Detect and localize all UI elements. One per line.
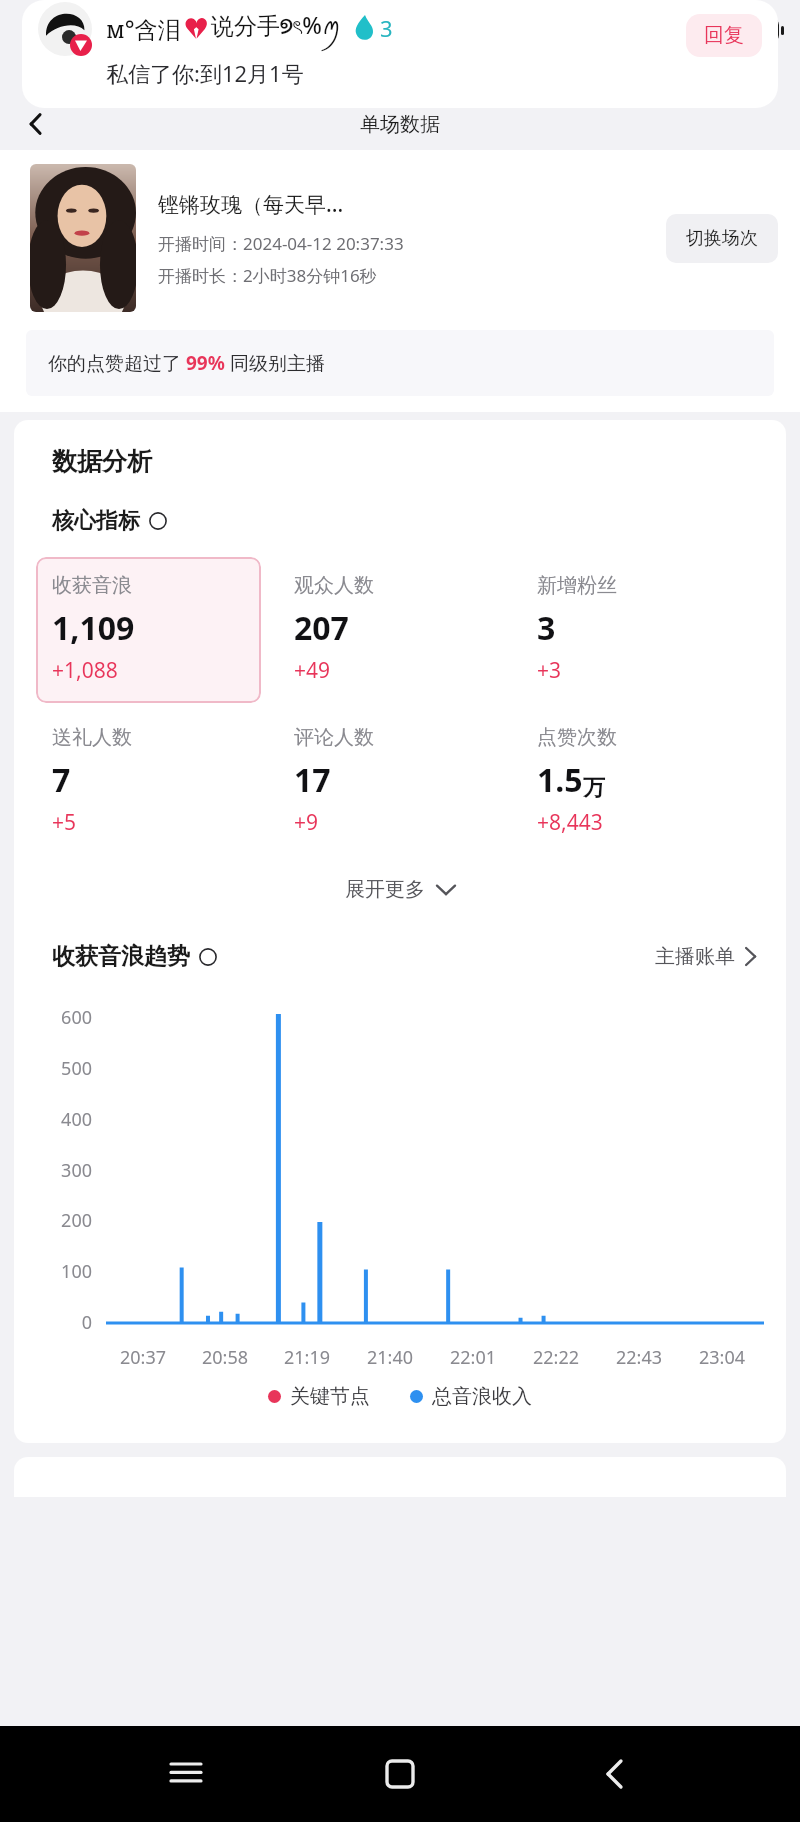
- staticText: 99%: [186, 350, 225, 376]
- staticText: 21:40: [367, 1345, 414, 1370]
- button[interactable]: [30, 164, 136, 312]
- button[interactable]: 总音浪收入: [410, 1384, 532, 1409]
- staticText: 600: [61, 1005, 92, 1030]
- staticText: +9: [294, 808, 319, 837]
- staticText: 23:04: [699, 1345, 746, 1370]
- button[interactable]: 收获音浪: [36, 557, 261, 703]
- button[interactable]: Recent apps: [158, 1746, 214, 1802]
- staticText: 同级别主播: [225, 350, 325, 376]
- staticText: 21:19: [284, 1345, 331, 1370]
- button[interactable]: 你的点赞超过了: [26, 330, 774, 396]
- staticText: 单场数据: [360, 112, 440, 137]
- button[interactable]: 回复: [686, 14, 762, 57]
- staticText: 300: [61, 1158, 92, 1183]
- staticText: 5G: [706, 15, 721, 30]
- staticText: 评论人数: [294, 725, 374, 750]
- button[interactable]: 收获音浪趋势: [52, 942, 217, 971]
- button[interactable]: 主播账单: [655, 944, 756, 969]
- staticText: 回复: [704, 23, 744, 48]
- staticText: +49: [294, 656, 331, 685]
- staticText: 1.5: [537, 758, 583, 802]
- staticText: 87: [747, 20, 765, 40]
- other: Location: [22, 11, 100, 47]
- staticText: 上午9:34: [130, 14, 218, 44]
- staticText: 说分手୭ৎ%ꪑ: [211, 4, 342, 52]
- staticText: 铿锵玫瑰（每天早...: [158, 190, 344, 219]
- staticText: 1,109: [52, 606, 135, 650]
- staticText: 开播时长：2小时38分钟16秒: [158, 264, 377, 287]
- button[interactable]: 展开更多: [14, 871, 786, 908]
- staticText: 22:22: [533, 1345, 580, 1370]
- staticText: 收获音浪: [52, 573, 132, 598]
- button[interactable]: Home: [372, 1746, 428, 1802]
- staticText: 万: [583, 774, 605, 802]
- staticText: 主播账单: [655, 944, 735, 969]
- button[interactable]: 评论人数: [278, 725, 521, 837]
- staticText: 收获音浪趋势: [52, 942, 190, 971]
- staticText: 100: [61, 1259, 92, 1284]
- staticText: 送礼人数: [52, 725, 132, 750]
- staticText: 私信了你:到12月1号: [106, 58, 304, 88]
- button[interactable]: 切换场次: [666, 214, 778, 263]
- button[interactable]: 新增粉丝: [521, 557, 764, 685]
- staticText: +5: [52, 808, 77, 837]
- staticText: 400: [61, 1107, 92, 1132]
- staticText: 总音浪收入: [432, 1384, 532, 1409]
- staticText: +8,443: [537, 808, 603, 837]
- staticText: 20:37: [120, 1345, 167, 1370]
- staticText: +1,088: [52, 656, 118, 685]
- staticText: 22:43: [616, 1345, 663, 1370]
- staticText: 0: [81, 1310, 92, 1335]
- staticText: +3: [537, 656, 562, 685]
- button[interactable]: Back: [586, 1746, 642, 1802]
- staticText: 3: [537, 606, 556, 650]
- staticText: ꮇ°含泪: [106, 13, 181, 44]
- staticText: 关键节点: [290, 1384, 370, 1409]
- button[interactable]: 核心指标: [52, 507, 167, 535]
- staticText: 切换场次: [686, 227, 758, 250]
- button[interactable]: 送礼人数: [36, 725, 278, 837]
- staticText: 点赞次数: [537, 725, 617, 750]
- button[interactable]: 点赞次数: [521, 725, 764, 837]
- staticText: 3: [380, 13, 393, 43]
- staticText: 22:01: [450, 1345, 497, 1370]
- staticText: 新增粉丝: [537, 573, 617, 598]
- staticText: 展开更多: [345, 877, 425, 902]
- staticText: 200: [61, 1208, 92, 1233]
- staticText: 17: [294, 758, 331, 802]
- button[interactable]: Back: [14, 102, 58, 146]
- staticText: 开播时间：2024-04-12 20:37:33: [158, 232, 404, 255]
- staticText: 500: [61, 1056, 92, 1081]
- staticText: 数据分析: [52, 446, 152, 477]
- staticText: 观众人数: [294, 573, 374, 598]
- button[interactable]: 观众人数: [278, 557, 521, 685]
- staticText: 7: [52, 758, 71, 802]
- button[interactable]: ꮇ°含泪: [22, 0, 778, 108]
- staticText: HD: [671, 22, 688, 37]
- staticText: 207: [294, 606, 349, 650]
- button[interactable]: 关键节点: [268, 1384, 370, 1409]
- staticText: 20:58: [202, 1345, 249, 1370]
- staticText: 你的点赞超过了: [48, 350, 186, 376]
- staticText: 核心指标: [52, 507, 140, 535]
